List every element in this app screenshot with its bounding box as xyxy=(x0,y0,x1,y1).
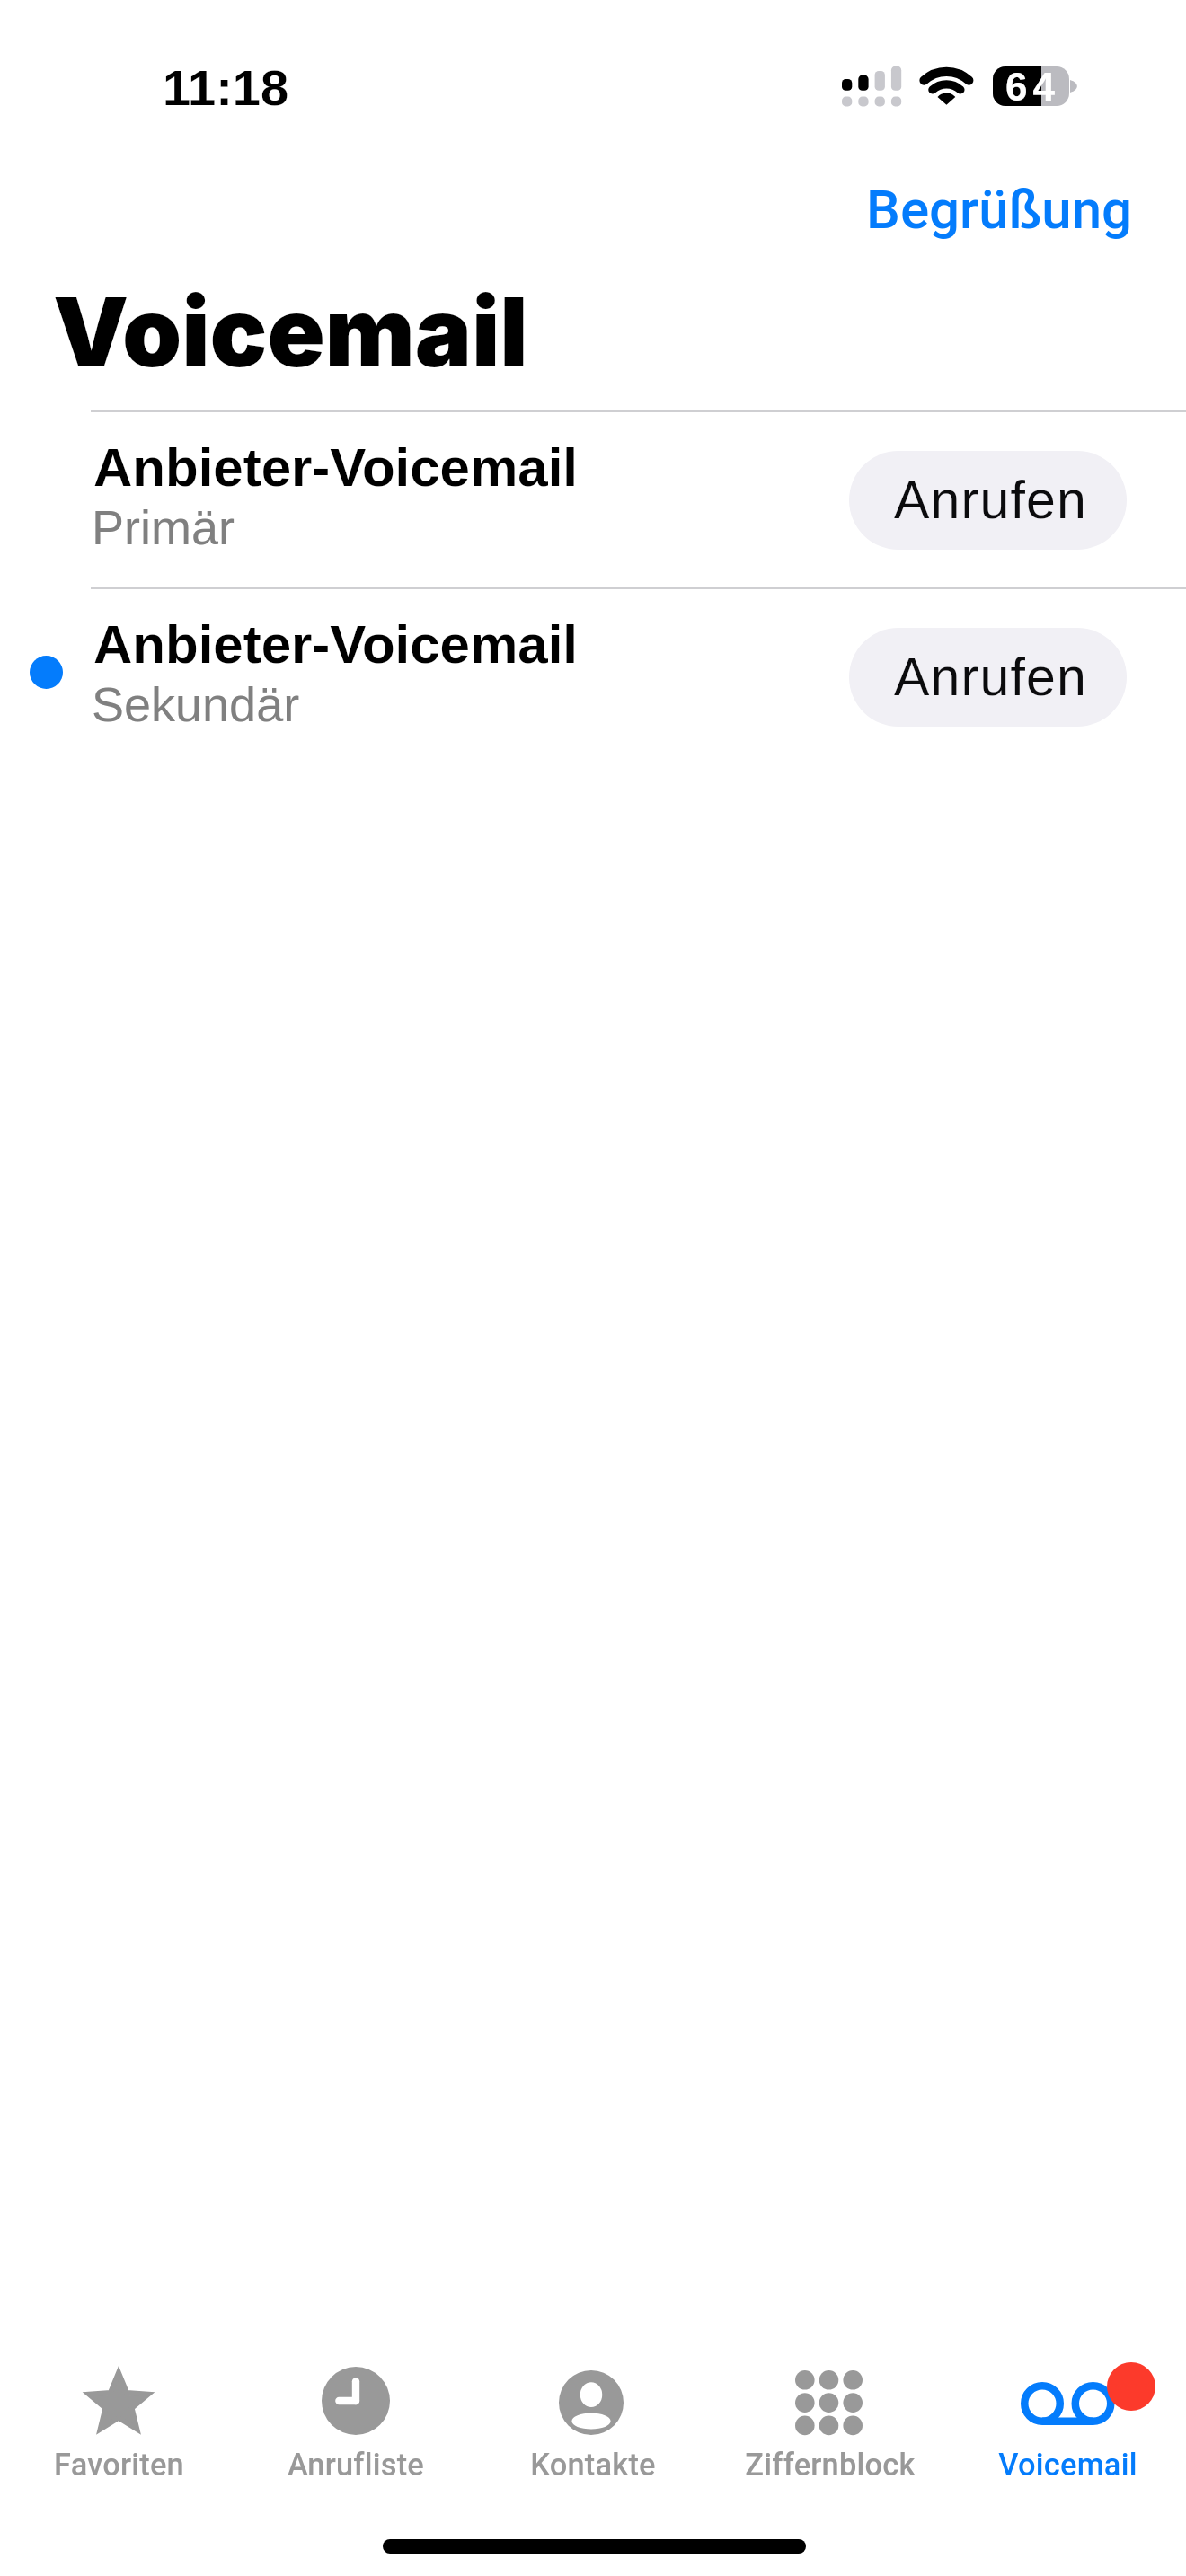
staticText: 64 xyxy=(1005,65,1060,104)
other: Wi-Fi xyxy=(920,66,974,109)
button[interactable]: Anrufen xyxy=(849,451,1127,550)
button[interactable]: Begrüßung xyxy=(839,156,1160,262)
other: Battery 64 percent xyxy=(993,66,1069,106)
staticText: Sekundär xyxy=(92,677,300,731)
staticText: Ziffernblock xyxy=(745,2447,916,2483)
staticText: Primär xyxy=(92,500,235,554)
other: Cellular signal strength xyxy=(842,66,901,107)
staticText: Voicemail xyxy=(53,274,528,389)
staticText: Anrufliste xyxy=(288,2447,424,2483)
staticText: Anrufen xyxy=(894,471,1088,530)
staticText: Voicemail xyxy=(998,2447,1137,2483)
staticText: Anrufen xyxy=(894,648,1088,707)
button[interactable]: Anbieter-Voicemail xyxy=(0,410,1186,587)
button[interactable]: Kontakte xyxy=(474,2355,712,2517)
button[interactable]: Ziffernblock xyxy=(712,2355,949,2517)
button[interactable]: Anbieter-Voicemail xyxy=(0,587,1186,764)
staticText: Favoriten xyxy=(54,2447,184,2483)
staticText: Kontakte xyxy=(530,2447,656,2483)
button[interactable]: Voicemail xyxy=(949,2355,1186,2517)
button[interactable]: Anrufliste xyxy=(237,2355,474,2517)
button[interactable]: Favoriten xyxy=(0,2355,237,2517)
staticText: Anbieter-Voicemail xyxy=(93,437,579,498)
staticText: Begrüßung xyxy=(866,178,1133,241)
staticText: 11:18 xyxy=(163,59,289,116)
staticText: Anbieter-Voicemail xyxy=(93,614,579,675)
button[interactable]: Anrufen xyxy=(849,628,1127,727)
